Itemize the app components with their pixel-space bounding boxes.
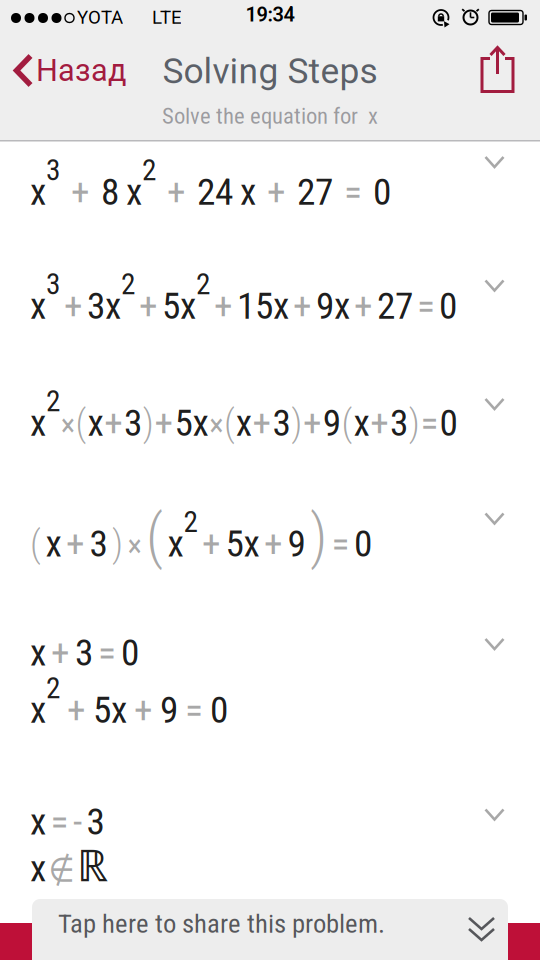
staticText: 0 (210, 689, 228, 731)
staticText: 19:34 (245, 3, 294, 26)
staticText: 9x (316, 285, 350, 327)
staticText: x (87, 402, 103, 444)
staticText: + (155, 402, 174, 444)
staticText: 15x (237, 285, 289, 327)
staticText: 0 (354, 522, 372, 565)
staticText: 3 (89, 522, 107, 565)
staticText: + (264, 522, 283, 565)
staticText: x (30, 631, 46, 674)
staticText: 0 (121, 631, 139, 674)
button[interactable]: x2 (0, 355, 540, 470)
staticText: ℝ (77, 835, 108, 893)
button[interactable]: x (0, 763, 540, 899)
staticText: = (421, 402, 439, 444)
staticText: ) (409, 401, 420, 445)
staticText: ) (310, 502, 327, 571)
button[interactable]: x3 (0, 238, 540, 355)
staticText: + (167, 171, 186, 213)
staticText: + (253, 402, 272, 444)
staticText: = (344, 171, 362, 213)
staticText: x (353, 402, 369, 444)
staticText: ( (30, 522, 41, 565)
staticText: Solve the equation for x (162, 103, 378, 129)
staticText: + (139, 285, 158, 327)
staticText: 0 (439, 402, 457, 444)
staticText: 3 (124, 402, 142, 444)
staticText: Tap here to share this problem. (58, 908, 385, 939)
staticText: x (30, 800, 46, 843)
staticText: 5x2 (162, 267, 210, 327)
staticText: + (67, 689, 86, 731)
staticText: 3x2 (87, 267, 135, 327)
staticText: 27 (377, 285, 413, 327)
staticText: YOTA (77, 6, 123, 28)
staticText: Solving Steps (162, 50, 377, 92)
staticText: x3 (30, 153, 60, 213)
button[interactable]: Tap here to share this problem. (32, 899, 508, 960)
staticText: x (236, 402, 252, 444)
staticText: 24 x (197, 171, 256, 213)
staticText: ) (291, 401, 302, 445)
staticText: 9 (160, 689, 178, 731)
staticText: ( (146, 502, 163, 571)
staticText: + (214, 285, 233, 327)
staticText: 3 (272, 402, 290, 444)
staticText: 8 x2 (101, 153, 156, 213)
staticText: × (61, 408, 75, 443)
staticText: + (202, 522, 221, 565)
button[interactable] (0, 0, 540, 100)
staticText: + (370, 402, 389, 444)
staticText: + (134, 689, 153, 731)
staticText: ) (143, 401, 154, 445)
staticText: 27 (297, 171, 333, 213)
staticText: + (51, 631, 70, 674)
staticText: + (303, 402, 322, 444)
staticText: = (331, 522, 349, 565)
staticText: 5x (93, 689, 127, 731)
staticText: ∉ (48, 851, 74, 889)
staticText: 3 (86, 800, 104, 843)
staticText: = (185, 689, 203, 731)
button[interactable]: Назад (0, 0, 140, 100)
staticText: + (66, 522, 85, 565)
staticText: = (50, 800, 68, 843)
staticText: + (64, 285, 83, 327)
staticText: + (354, 285, 373, 327)
staticText: × (209, 408, 223, 443)
staticText: × (127, 528, 141, 563)
staticText: 5x (225, 522, 259, 565)
staticText: 0 (373, 171, 391, 213)
staticText: x (45, 522, 61, 565)
staticText: x2 (167, 505, 197, 565)
staticText: ( (76, 401, 87, 445)
staticText: + (104, 402, 123, 444)
staticText: + (267, 171, 286, 213)
staticText: 0 (439, 285, 457, 327)
staticText: + (71, 171, 90, 213)
staticText: LTE (152, 6, 182, 28)
staticText: x3 (30, 267, 60, 327)
staticText: 3 (75, 631, 93, 674)
staticText: - (73, 800, 82, 843)
button[interactable]: x (0, 593, 540, 763)
staticText: = (417, 285, 435, 327)
staticText: x (30, 847, 46, 890)
staticText: 9 (323, 402, 341, 444)
button[interactable]: ( (0, 470, 540, 593)
staticText: x2 (30, 671, 60, 731)
staticText: ) (112, 522, 123, 565)
staticText: ( (224, 401, 235, 445)
staticText: = (98, 631, 116, 674)
button[interactable]: x3 (0, 142, 540, 238)
staticText: x2 (30, 384, 60, 444)
staticText: 3 (390, 402, 408, 444)
staticText: ( (342, 401, 353, 445)
staticText: Назад (36, 52, 127, 88)
staticText: + (293, 285, 312, 327)
staticText: 9 (287, 522, 305, 565)
staticText: 5x (174, 402, 208, 444)
